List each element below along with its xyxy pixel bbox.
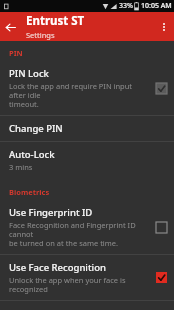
staticText: Use Fingerprint ID (9, 206, 93, 219)
staticText: Biometrics (9, 187, 50, 197)
button[interactable]: Auto-Lock (0, 142, 174, 178)
button[interactable]: Toggle setting (156, 272, 167, 283)
staticText: PIN (9, 48, 23, 58)
staticText: Change PIN (9, 122, 63, 135)
button[interactable]: Change PIN (0, 116, 174, 141)
button[interactable]: Use Face Recognition (0, 255, 174, 300)
staticText: 3 mins (9, 162, 33, 172)
button[interactable]: PIN Lock (0, 61, 174, 115)
button[interactable]: More options (154, 17, 174, 37)
button[interactable]: Back (0, 17, 20, 37)
staticText: Entrust ST (26, 13, 85, 29)
staticText: 10:05 AM (141, 1, 172, 11)
staticText: Use Face Recognition (9, 261, 106, 274)
staticText: Unlock the app when your face is recogni… (9, 275, 150, 294)
staticText: Face Recognition and Fingerprint ID cann… (9, 220, 150, 248)
button[interactable]: Use Fingerprint ID (0, 200, 174, 254)
staticText: Auto-Lock (9, 148, 55, 161)
staticText: 33% (119, 1, 133, 11)
staticText: Lock the app and require PIN input after… (9, 81, 150, 109)
button[interactable]: Toggle setting (156, 222, 167, 233)
staticText: PIN Lock (9, 67, 49, 80)
button[interactable]: Toggle setting (156, 83, 167, 94)
staticText: Settings (26, 30, 55, 40)
